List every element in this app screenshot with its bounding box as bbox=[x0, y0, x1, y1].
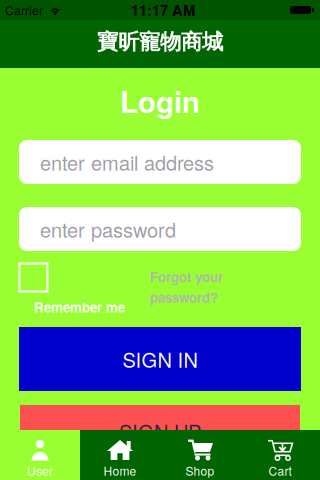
staticText: password? bbox=[150, 288, 218, 307]
button[interactable]: enter password bbox=[19, 207, 301, 251]
staticText: enter password bbox=[40, 215, 176, 243]
button[interactable]: Shop bbox=[160, 430, 240, 480]
button[interactable]: SIGN UP bbox=[20, 405, 300, 469]
staticText: Login bbox=[120, 80, 200, 121]
button[interactable]: Home bbox=[80, 430, 160, 480]
staticText: Home bbox=[103, 462, 136, 479]
button[interactable]: SIGN IN bbox=[19, 327, 301, 391]
button[interactable]: Forgot your bbox=[150, 267, 223, 307]
button[interactable]: User bbox=[0, 430, 80, 480]
staticText: Remember me bbox=[34, 298, 125, 316]
button[interactable]: enter email address bbox=[19, 140, 301, 184]
staticText: SIGN IN bbox=[122, 345, 197, 373]
staticText: Shop bbox=[185, 462, 214, 479]
staticText: SIGN UP bbox=[119, 417, 201, 445]
staticText: 11:17 AM bbox=[131, 0, 195, 20]
button[interactable] bbox=[19, 263, 47, 291]
staticText: enter email address bbox=[40, 148, 214, 176]
button[interactable]: Cart bbox=[240, 430, 320, 480]
staticText: Cart bbox=[268, 462, 291, 479]
staticText: User bbox=[27, 462, 53, 479]
staticText: 寶昕寵物商城 bbox=[97, 29, 223, 55]
staticText: Carrier bbox=[5, 2, 43, 18]
staticText: Forgot your bbox=[150, 267, 223, 286]
